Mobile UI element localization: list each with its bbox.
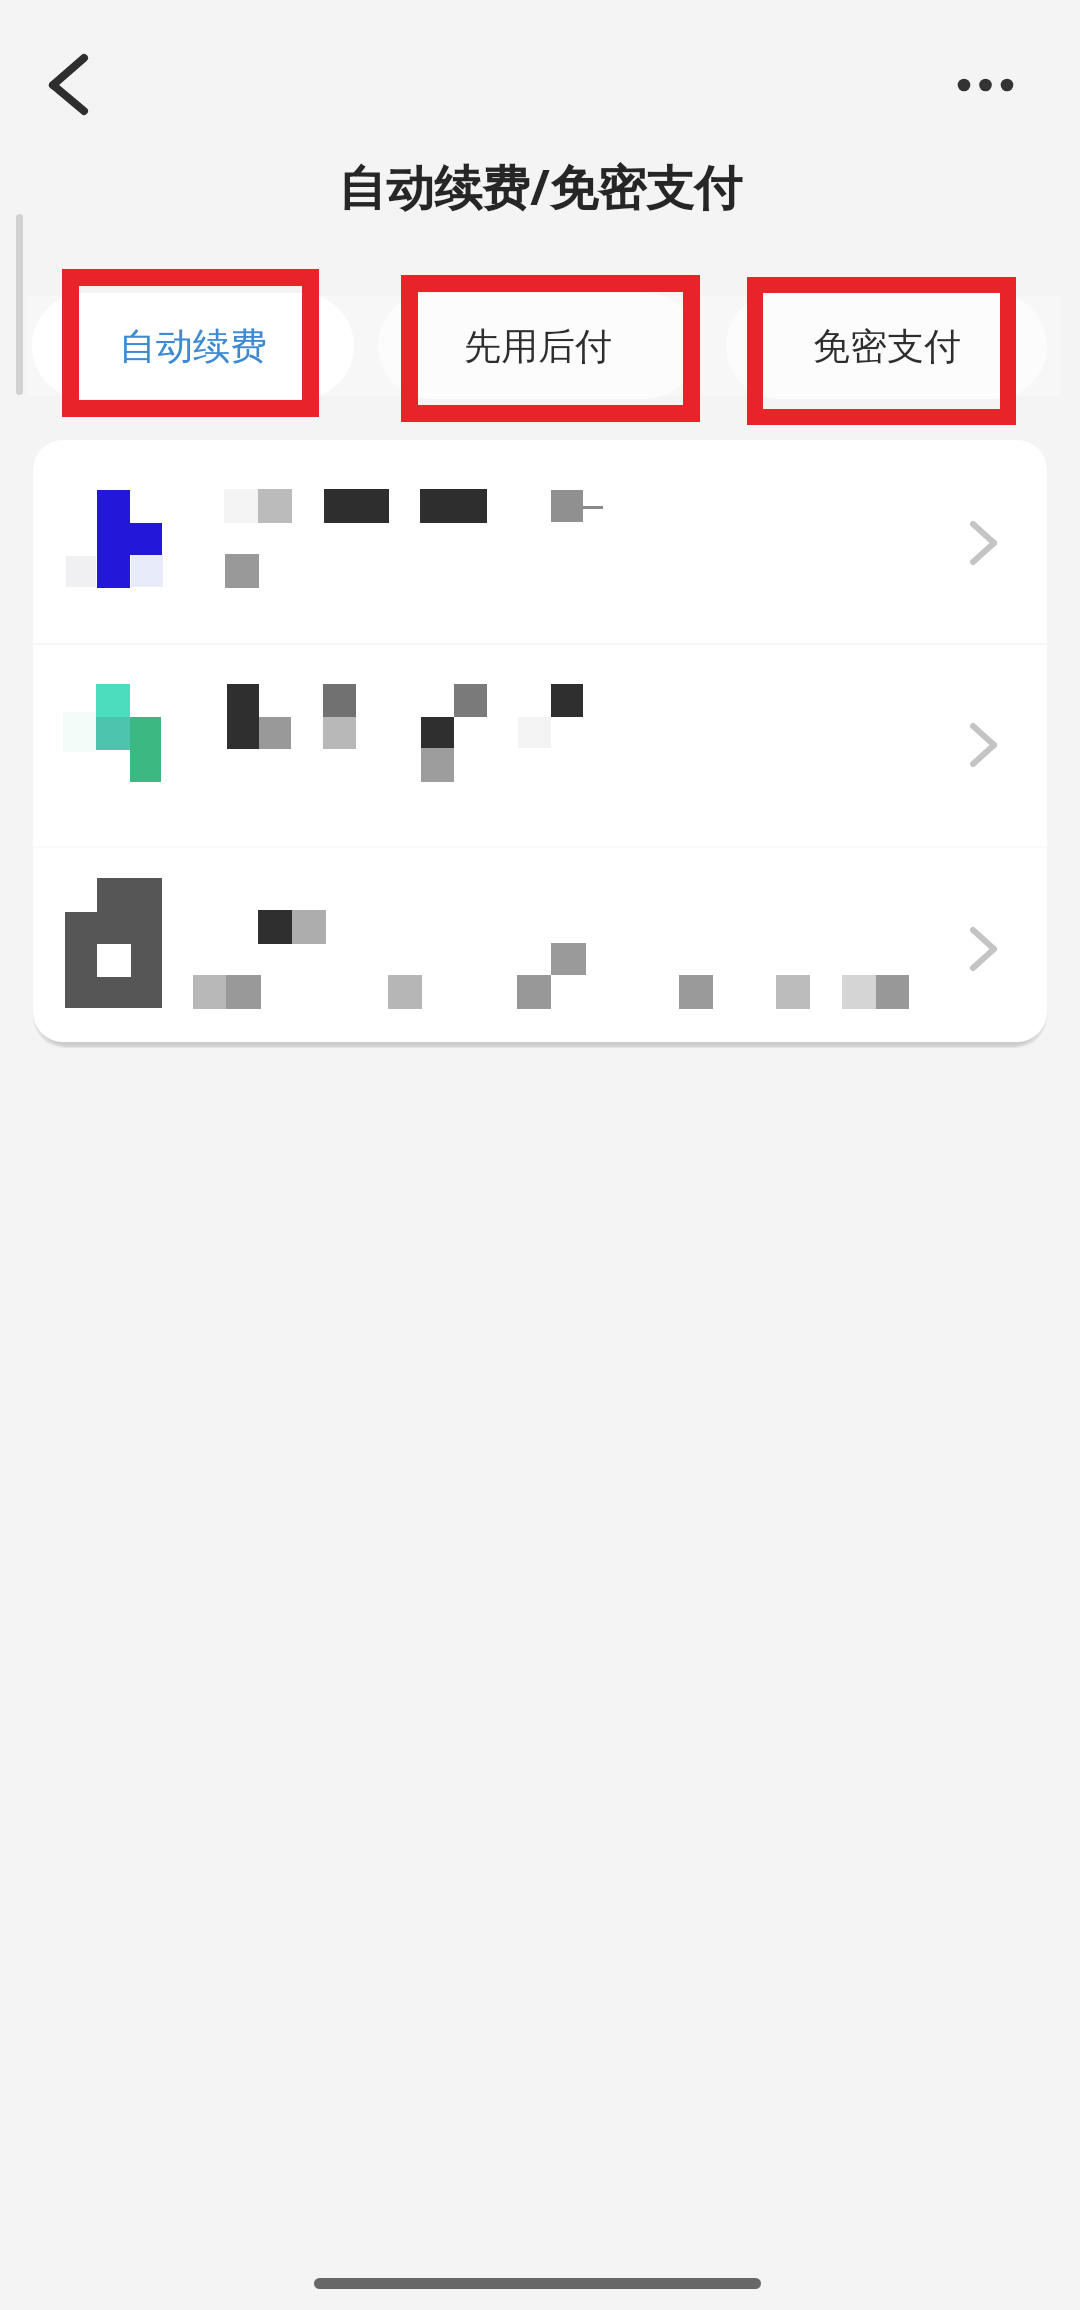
button[interactable]: 免密支付 (726, 293, 1047, 399)
button[interactable] (33, 440, 1047, 644)
staticText: 免密支付 (813, 323, 961, 370)
staticText: 自动续费/免密支付 (338, 154, 742, 220)
button[interactable]: Back (18, 30, 120, 140)
button[interactable] (33, 644, 1047, 847)
button[interactable]: More options (928, 32, 1052, 138)
staticText: 自动续费 (119, 323, 267, 370)
button[interactable]: 先用后付 (378, 293, 698, 399)
button[interactable] (33, 847, 1047, 1042)
staticText: 先用后付 (464, 323, 612, 370)
button[interactable]: 自动续费 (32, 293, 354, 399)
